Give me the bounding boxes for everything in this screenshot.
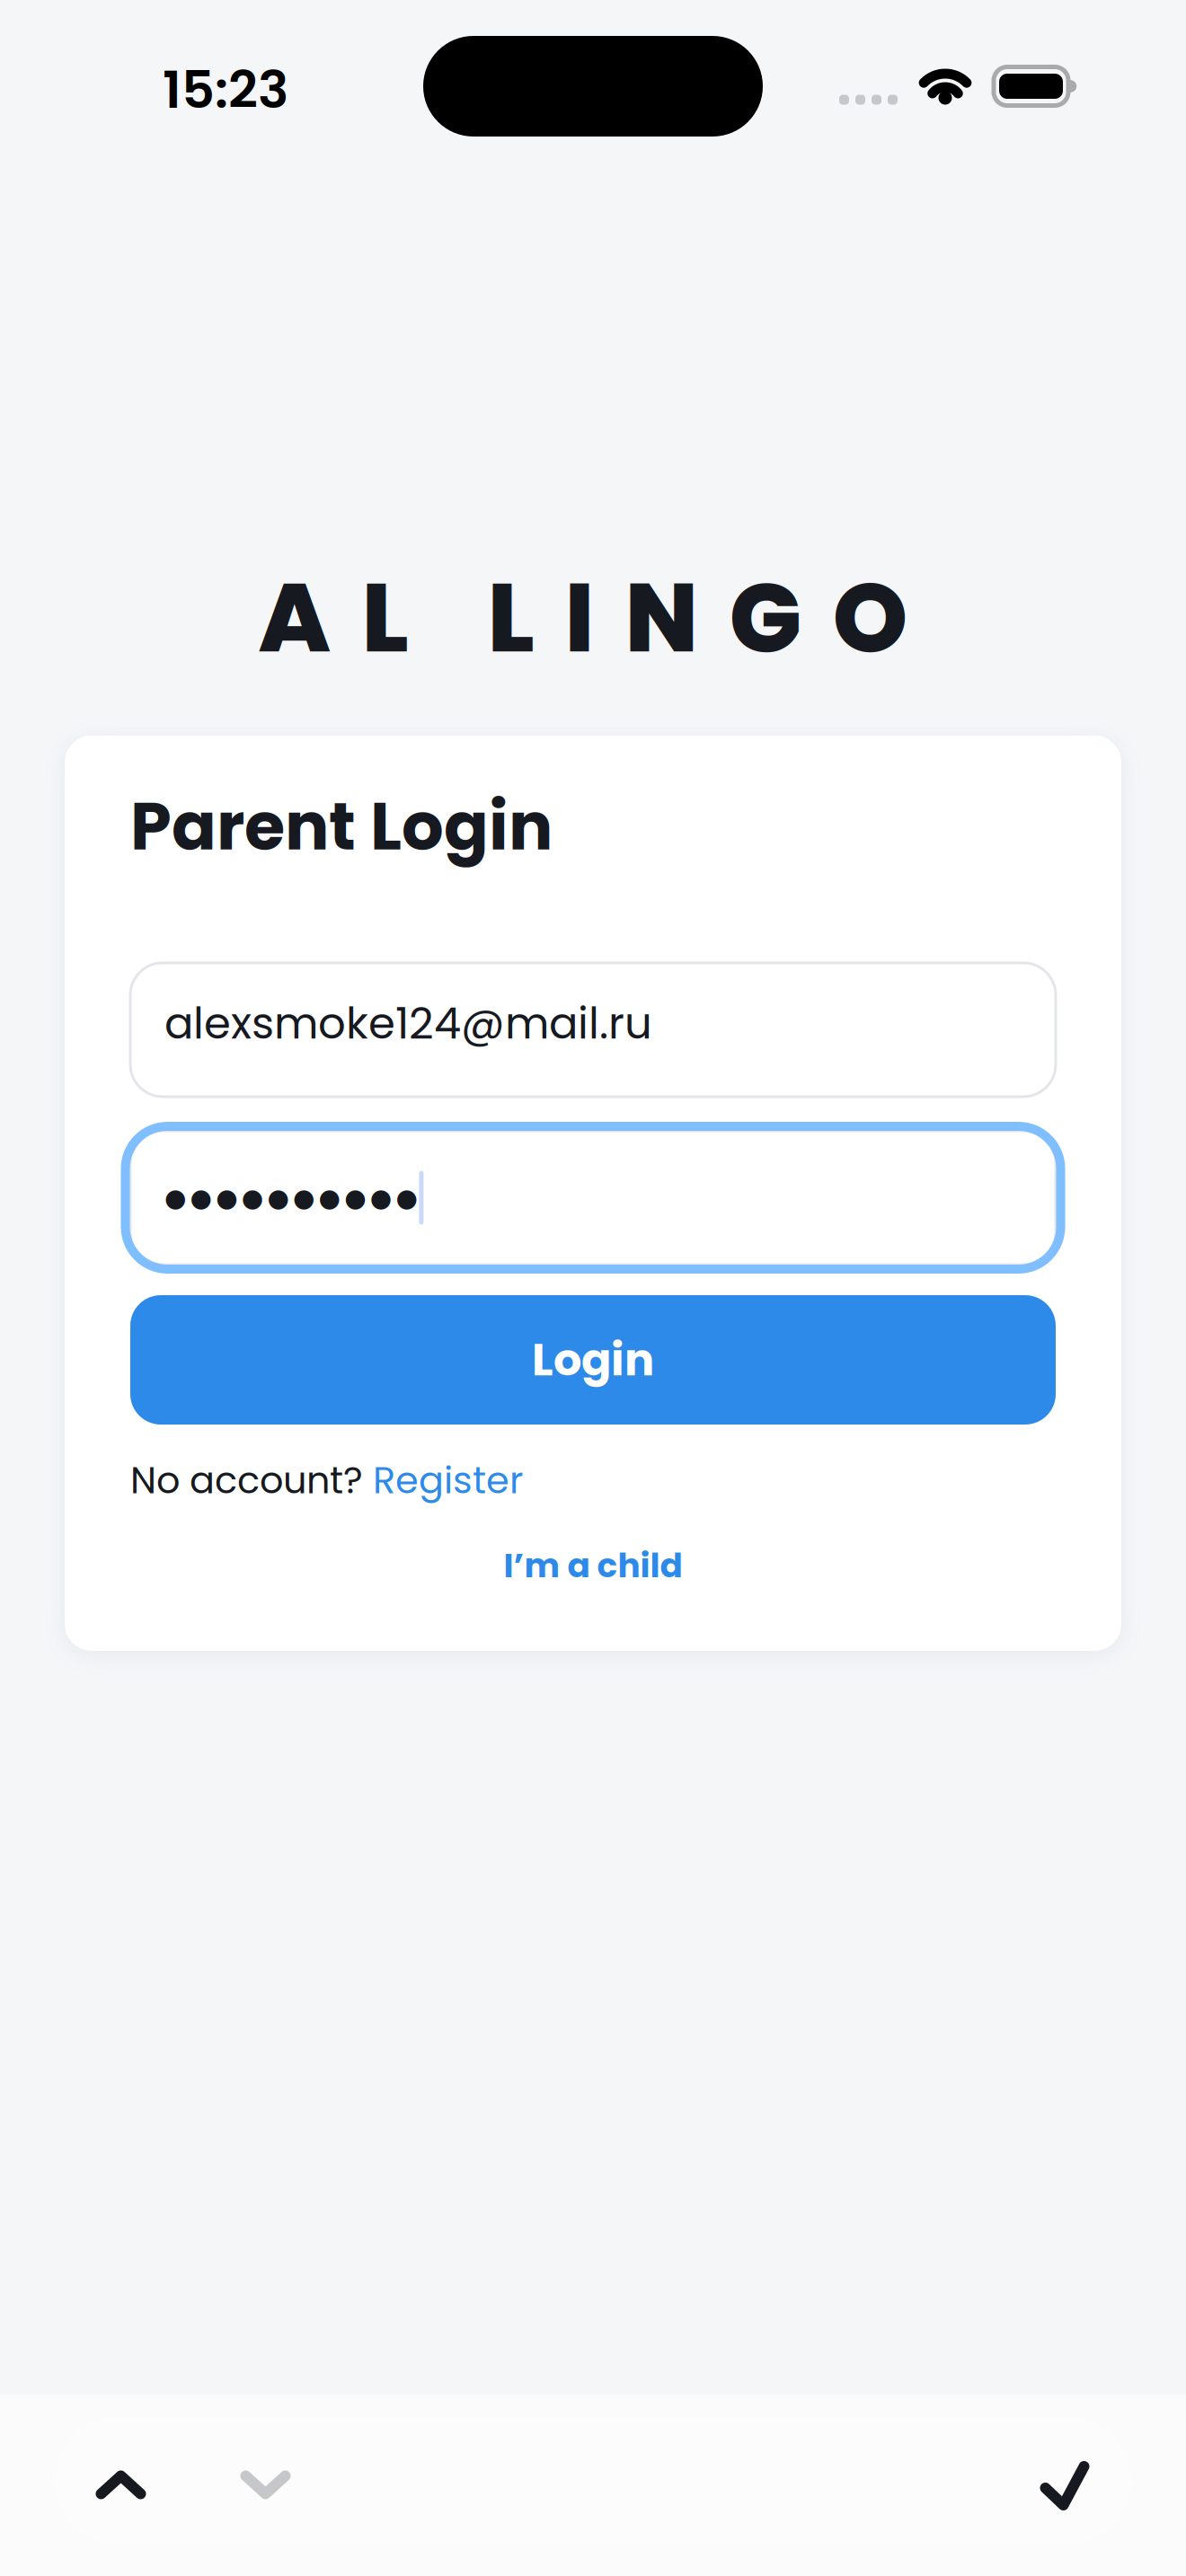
staticText: Login (532, 1329, 654, 1391)
staticText: AL LINGO (258, 551, 908, 685)
button[interactable]: Login (130, 1295, 1056, 1425)
staticText: I’m a child (504, 1542, 682, 1589)
staticText: Parent Login (130, 780, 553, 872)
staticText: alexsmoke124@mail.ru (164, 993, 652, 1054)
staticText: ●●●●●●●●●● (164, 1183, 417, 1212)
staticText: 15:23 (163, 54, 288, 126)
button[interactable]: Previous field (55, 2416, 186, 2545)
button[interactable]: Done (1000, 2416, 1129, 2545)
button[interactable]: No account? (130, 1455, 1056, 1505)
button[interactable]: Next field (200, 2416, 331, 2545)
button[interactable]: I’m a child (130, 1546, 1056, 1585)
staticText: Register (373, 1454, 523, 1506)
staticText: No account? (130, 1454, 373, 1506)
